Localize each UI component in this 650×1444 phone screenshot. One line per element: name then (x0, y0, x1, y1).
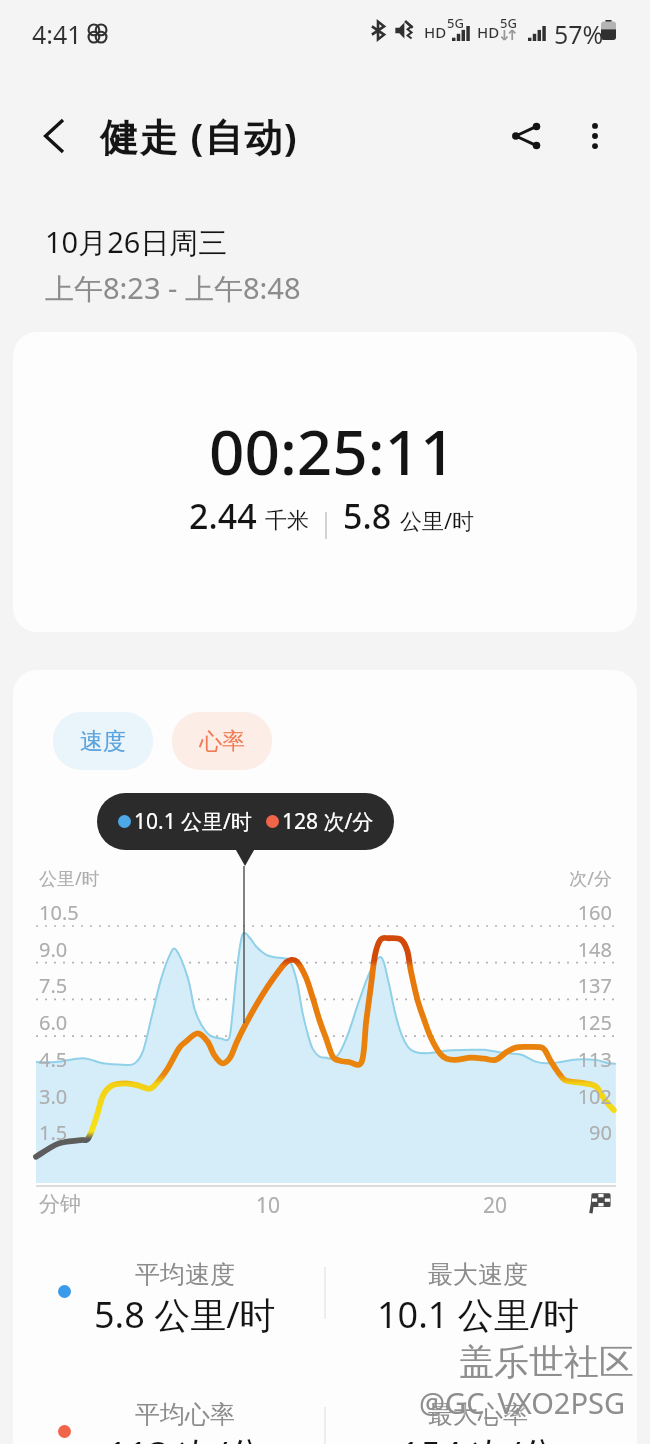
staticText: @GC_VXO2PSG (421, 1385, 628, 1424)
staticText: 20 (483, 1191, 508, 1220)
button[interactable]: Share (498, 108, 554, 164)
staticText: 健走 (自动) (100, 110, 299, 162)
staticText: 上午8:23 - 上午8:48 (45, 268, 301, 308)
staticText: 4:41 (32, 17, 82, 51)
staticText: HD (477, 22, 500, 42)
staticText: 154 次/分 (400, 1430, 557, 1444)
staticText: 2.44 (189, 493, 257, 539)
staticText: 7.5 (39, 972, 68, 999)
staticText: 次/分 (530, 866, 612, 891)
staticText: 10 (256, 1191, 281, 1220)
staticText: 10.5 (39, 899, 79, 926)
staticText: 125 (540, 1009, 612, 1036)
staticText: 128 次/分 (282, 807, 374, 836)
staticText: 5G (500, 14, 517, 32)
staticText: 1.5 (39, 1119, 68, 1146)
staticText: 10.1 公里/时 (134, 807, 252, 836)
staticText: 最大速度 (428, 1259, 528, 1290)
staticText: 心率 (199, 727, 245, 756)
staticText: 113 (540, 1046, 612, 1073)
staticText: 6.0 (39, 1009, 68, 1036)
staticText: 148 (540, 936, 612, 963)
staticText: 5G (447, 14, 464, 32)
staticText: 速度 (80, 727, 126, 756)
staticText: 盖乐世社区 (459, 1340, 634, 1384)
staticText: 90 (540, 1119, 612, 1146)
staticText: 平均速度 (135, 1259, 235, 1290)
staticText: HD (424, 22, 447, 42)
staticText: 160 (540, 899, 612, 926)
button[interactable]: 平均心率 (35, 1399, 335, 1444)
staticText: 5.8 公里/时 (94, 1290, 276, 1339)
staticText: 9.0 (39, 936, 68, 963)
button[interactable]: More options (567, 108, 623, 164)
staticText: 10.1 公里/时 (377, 1290, 580, 1339)
staticText: 102 (540, 1083, 612, 1110)
button[interactable]: 00:25:11 (13, 332, 637, 632)
staticText: 公里/时 (400, 505, 475, 535)
staticText: 平均心率 (135, 1399, 235, 1430)
button[interactable]: 心率 (172, 712, 272, 770)
staticText: 分钟 (39, 1191, 81, 1217)
button[interactable]: 速度 (53, 712, 153, 770)
staticText: 3.0 (39, 1083, 68, 1110)
staticText: 57% (554, 17, 604, 51)
button[interactable]: Back (28, 110, 80, 162)
staticText: 10月26日周三 (45, 222, 228, 262)
button[interactable]: 最大速度 (328, 1259, 628, 1339)
staticText: 公里/时 (39, 866, 100, 891)
staticText: 盖乐世社区 (461, 1342, 636, 1386)
staticText: 千米 (265, 507, 309, 535)
staticText: 137 (540, 972, 612, 999)
staticText: @GC_VXO2PSG (419, 1383, 626, 1422)
staticText: 00:25:11 (209, 409, 456, 493)
staticText: 4.5 (39, 1046, 68, 1073)
staticText: 5.8 (343, 493, 392, 539)
button[interactable]: 最大心率 (328, 1399, 628, 1444)
staticText: 113 次/分 (107, 1430, 264, 1444)
button[interactable]: 平均速度 (35, 1259, 335, 1339)
staticText: 最大心率 (428, 1399, 528, 1430)
